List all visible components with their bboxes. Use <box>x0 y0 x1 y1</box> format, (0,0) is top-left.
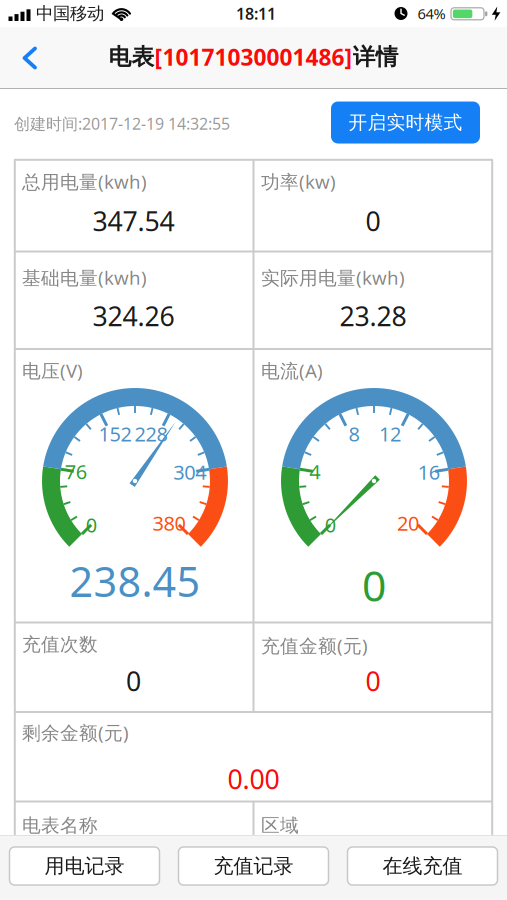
staticText: 380 <box>152 510 185 536</box>
staticText: 228 <box>135 420 168 447</box>
staticText: 开启实时模式 <box>348 111 462 134</box>
staticText: 区域 <box>261 814 299 837</box>
staticText: 0 <box>325 512 336 538</box>
staticText: 0 <box>86 512 97 538</box>
staticText: 238.45 <box>69 554 200 608</box>
staticText: 电表名称 <box>22 814 98 837</box>
staticText: 详情 <box>352 43 398 71</box>
button[interactable]: 开启实时模式 <box>331 101 480 143</box>
button[interactable]: 在线充值 <box>347 847 497 885</box>
staticText: 电流(A) <box>261 358 323 383</box>
staticText: 在线充值 <box>382 854 462 878</box>
button[interactable]: Back <box>21 46 39 69</box>
staticText: 324.26 <box>92 298 174 334</box>
staticText: 0 <box>365 203 380 239</box>
button[interactable]: 充值记录 <box>178 847 328 885</box>
staticText: 充值次数 <box>22 633 98 656</box>
staticText: [10171030001486] <box>154 42 352 72</box>
staticText: 18:11 <box>236 3 276 24</box>
staticText: 0.00 <box>227 761 279 797</box>
staticText: 总用电量(kwh) <box>22 169 147 194</box>
staticText: 用电记录 <box>44 854 124 878</box>
staticText: 电表 <box>108 43 154 71</box>
staticText: 347.54 <box>92 203 174 239</box>
staticText: 0 <box>365 663 380 699</box>
staticText: 充值记录 <box>213 854 293 878</box>
button[interactable]: 用电记录 <box>9 847 159 885</box>
staticText: 实际用电量(kwh) <box>261 265 405 290</box>
staticText: 152 <box>98 420 131 447</box>
staticText: 4 <box>309 458 320 485</box>
staticText: 中国移动 <box>36 3 104 24</box>
staticText: 功率(kw) <box>261 169 336 194</box>
staticText: 16 <box>418 459 440 485</box>
staticText: 基础电量(kwh) <box>22 265 147 290</box>
staticText: 0 <box>126 663 141 699</box>
staticText: 20 <box>397 510 419 536</box>
staticText: 电压(V) <box>22 358 83 383</box>
staticText: 创建时间:2017-12-19 14:32:55 <box>14 113 230 134</box>
staticText: 76 <box>65 458 87 485</box>
staticText: 12 <box>379 420 401 447</box>
staticText: 64% <box>417 4 445 23</box>
staticText: 304 <box>173 459 206 485</box>
staticText: 23.28 <box>339 298 406 334</box>
staticText: 充值金额(元) <box>261 633 368 658</box>
staticText: 8 <box>348 420 359 447</box>
staticText: 剩余金额(元) <box>22 720 129 745</box>
staticText: 0 <box>362 557 386 613</box>
